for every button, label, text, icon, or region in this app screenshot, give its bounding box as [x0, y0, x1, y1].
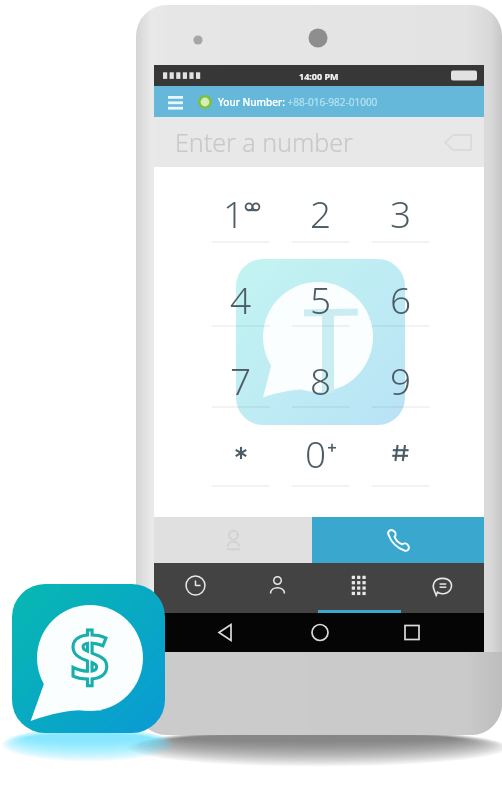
button[interactable]: Menu [162, 89, 188, 115]
staticText: 14:00 PM [299, 70, 339, 82]
staticText: 0 [305, 428, 327, 478]
button[interactable]: 6 [361, 258, 441, 340]
button[interactable]: 8 [281, 339, 361, 421]
button[interactable] [361, 412, 441, 494]
staticText: 7 [230, 355, 252, 405]
button[interactable]: Recents [154, 563, 236, 613]
staticText: 5 [310, 274, 332, 324]
staticText: 3 [390, 188, 412, 238]
button[interactable]: 7 [201, 339, 281, 421]
staticText: 9 [390, 355, 412, 405]
staticText: Enter a number [175, 125, 353, 159]
staticText: 2 [310, 188, 332, 238]
button[interactable]: 9 [361, 339, 441, 421]
button[interactable]: 0 [281, 412, 361, 494]
button[interactable]: 4 [201, 258, 281, 340]
button[interactable] [201, 412, 281, 494]
button[interactable]: Call [312, 517, 484, 563]
button[interactable]: App icon [12, 584, 165, 733]
button[interactable]: 1 [201, 172, 281, 254]
staticText: 8 [310, 355, 332, 405]
button[interactable]: Messages [401, 563, 484, 613]
button[interactable]: 5 [281, 258, 361, 340]
button[interactable]: Status [196, 93, 214, 111]
staticText: 1 [223, 188, 245, 238]
button[interactable]: Backspace [439, 123, 477, 161]
staticText: 4 [230, 274, 252, 324]
button[interactable]: 2 [281, 172, 361, 254]
staticText: $ [70, 608, 110, 702]
staticText: +88-016-982-01000 [285, 95, 378, 109]
button[interactable]: Keypad [318, 563, 401, 613]
button[interactable]: Contacts [236, 563, 318, 613]
staticText: 6 [390, 274, 412, 324]
button[interactable]: 3 [361, 172, 441, 254]
staticText: Your Number: [218, 95, 285, 109]
